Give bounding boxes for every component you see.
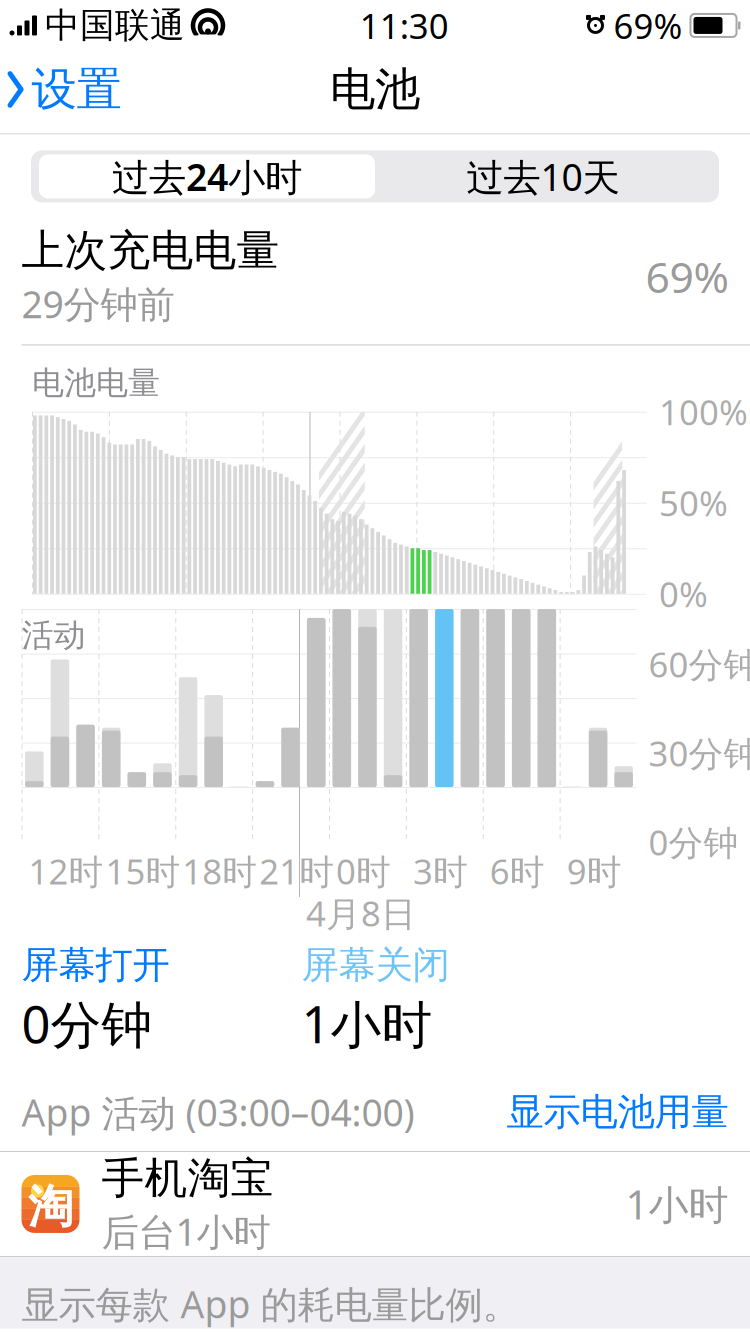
staticText: 4月8日 bbox=[306, 890, 416, 936]
staticText: 3时 bbox=[413, 848, 468, 894]
staticText: 上次充电电量 bbox=[21, 224, 279, 277]
staticText: 69% bbox=[613, 2, 682, 48]
staticText: 30分钟 bbox=[648, 730, 750, 776]
staticText: 0% bbox=[659, 571, 708, 617]
staticText: 18时 bbox=[182, 848, 257, 894]
staticText: 60分钟 bbox=[648, 641, 750, 687]
staticText: 电池 bbox=[330, 62, 420, 117]
staticText: 1小时 bbox=[625, 1177, 728, 1230]
staticText: 50% bbox=[659, 480, 728, 526]
staticText: 屏幕打开 bbox=[21, 942, 169, 988]
staticText: 显示电池用量 bbox=[506, 1089, 728, 1135]
staticText: 1小时 bbox=[301, 990, 432, 1057]
staticText: 电池电量 bbox=[32, 363, 160, 403]
staticText: 9时 bbox=[567, 848, 622, 894]
staticText: 活动 bbox=[21, 616, 85, 655]
staticText: 100% bbox=[659, 389, 748, 435]
button[interactable]: 过去24小时 bbox=[39, 154, 375, 198]
staticText: 0分钟 bbox=[648, 819, 738, 865]
staticText: 屏幕关闭 bbox=[301, 942, 449, 988]
staticText: 0分钟 bbox=[21, 990, 152, 1057]
staticText: 29分钟前 bbox=[21, 279, 174, 328]
staticText: App 活动 (03:00–04:00) bbox=[21, 1087, 414, 1137]
staticText: 显示每款 App 的耗电量比例。 bbox=[21, 1279, 519, 1329]
staticText: 过去24小时 bbox=[112, 152, 302, 201]
staticText: 6时 bbox=[490, 848, 545, 894]
button[interactable]: 显示电池用量 bbox=[506, 1089, 728, 1135]
staticText: 淘 bbox=[28, 1179, 73, 1235]
staticText: 设置 bbox=[31, 62, 121, 117]
staticText: 69% bbox=[645, 248, 728, 305]
staticText: 12时 bbox=[28, 848, 103, 894]
button[interactable]: 过去10天 bbox=[375, 154, 711, 198]
staticText: 15时 bbox=[105, 848, 180, 894]
staticText: 中国联通 bbox=[45, 4, 185, 47]
staticText: 11:30 bbox=[360, 2, 449, 48]
button[interactable]: 返回设置 bbox=[0, 59, 135, 119]
staticText: 手机淘宝 bbox=[101, 1152, 273, 1204]
staticText: 过去10天 bbox=[466, 152, 619, 201]
staticText: 0时 bbox=[336, 848, 391, 894]
staticText: 后台1小时 bbox=[101, 1206, 270, 1256]
button[interactable]: 淘 bbox=[0, 1152, 750, 1256]
staticText: 21时 bbox=[259, 848, 334, 894]
